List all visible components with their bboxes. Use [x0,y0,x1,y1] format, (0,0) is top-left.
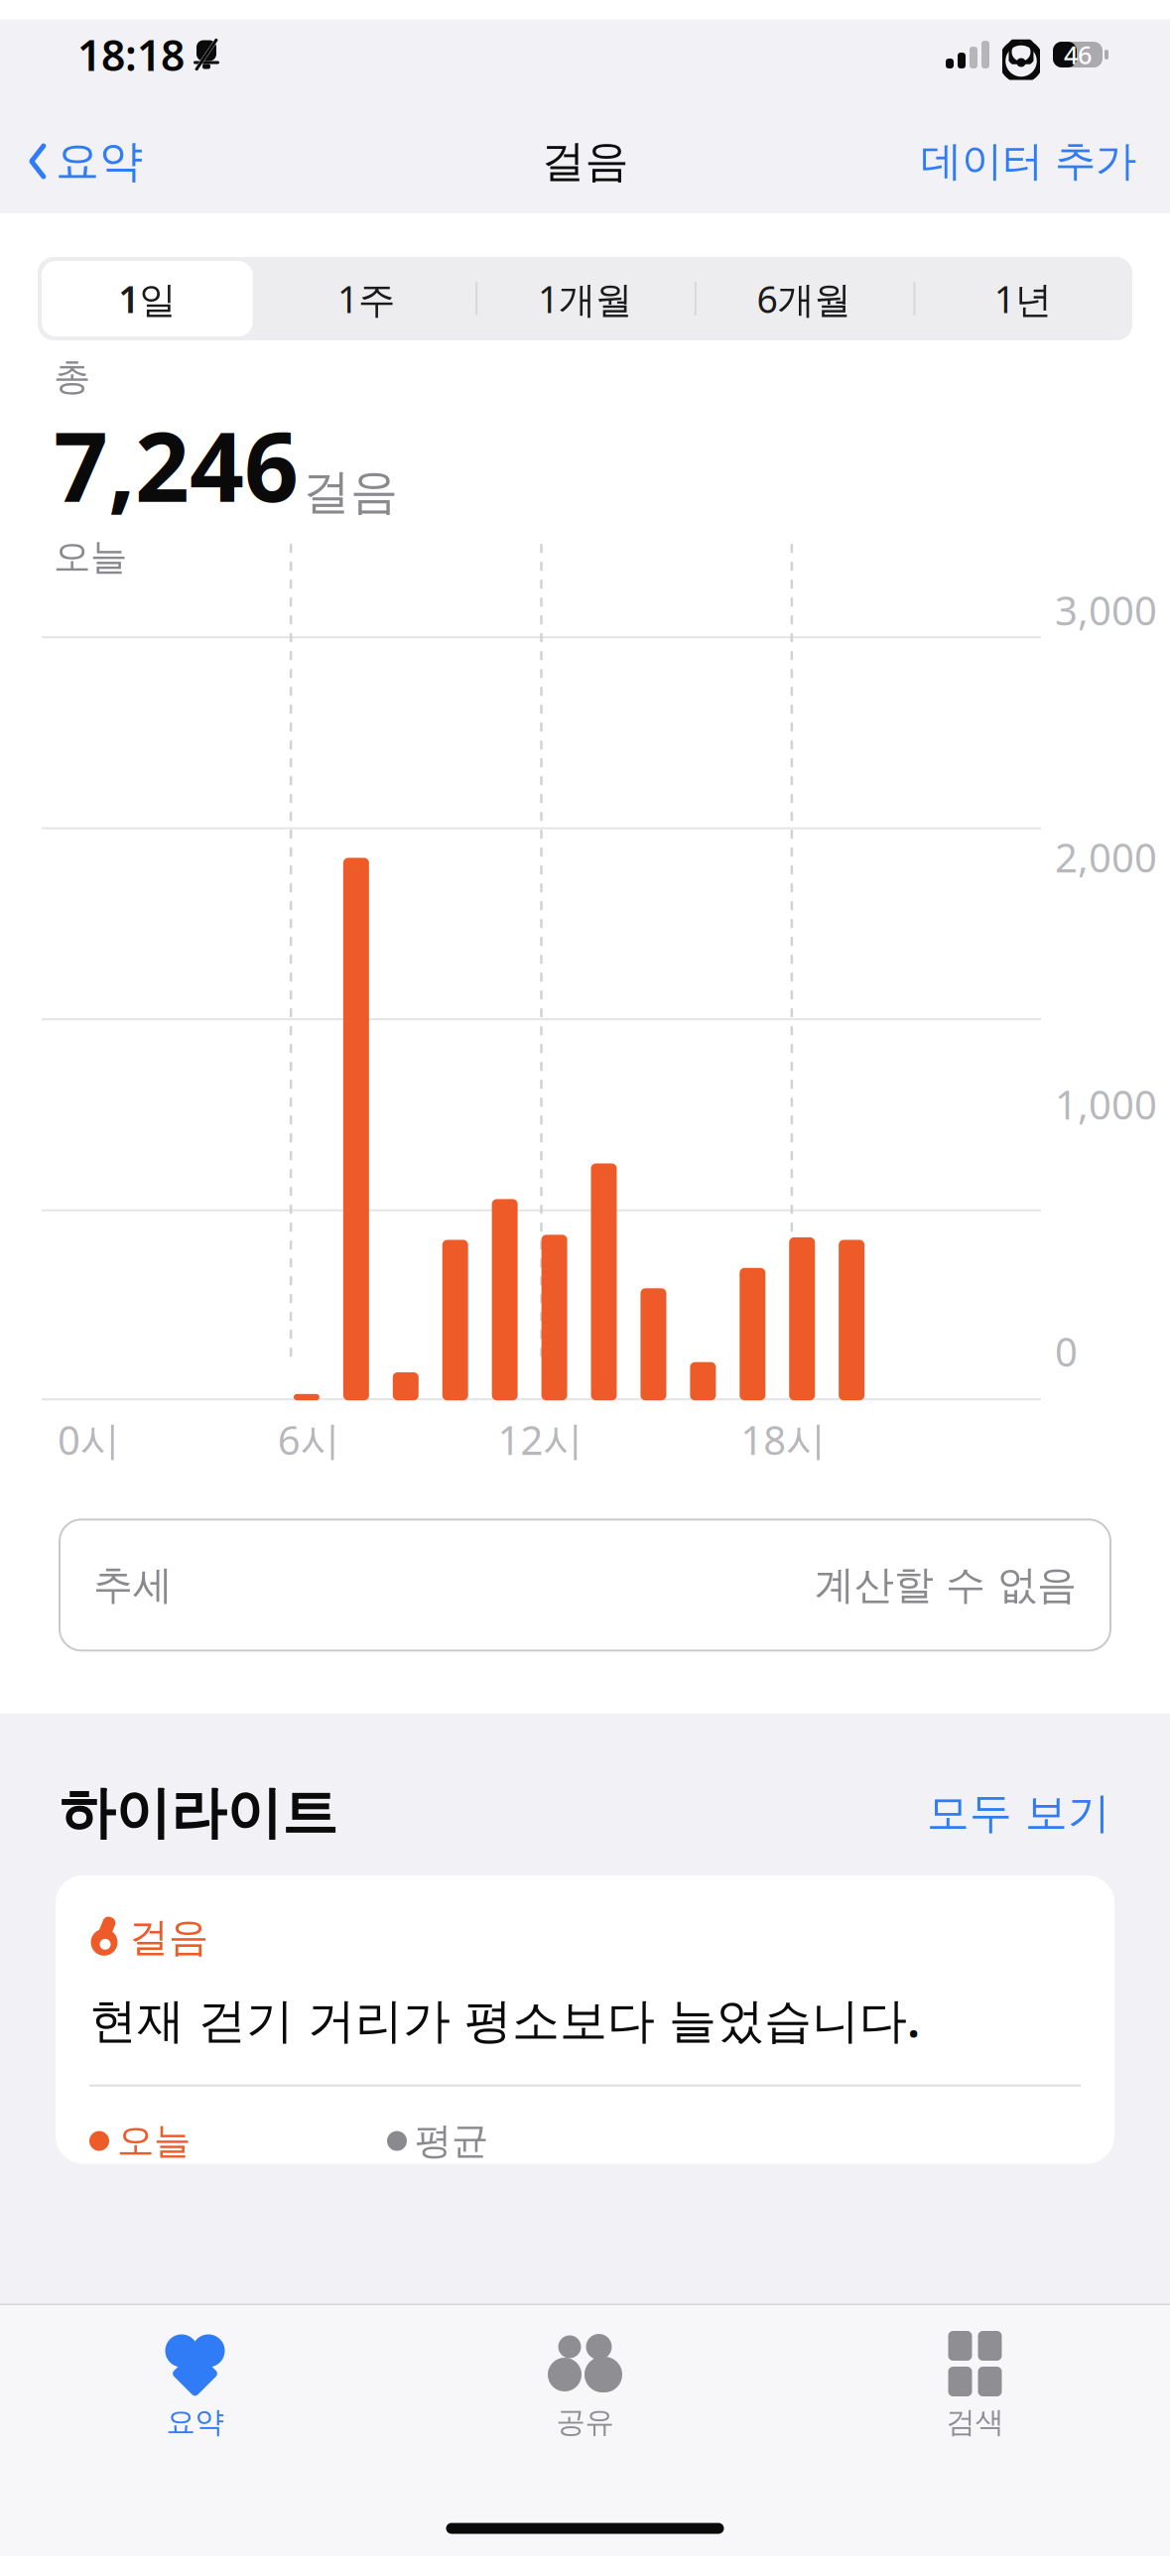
button[interactable]: 요약 [0,125,143,198]
staticText: 18:18 [77,26,185,83]
staticText: 0 [1055,1325,1078,1378]
button[interactable]: 검색 [780,2327,1170,2446]
staticText: 1,000 [1055,1078,1157,1130]
staticText: 계산할 수 없음 [815,1561,1077,1609]
button[interactable]: 1개월 [476,257,694,340]
button[interactable]: 1일 [38,257,257,340]
staticText: 요약 [56,134,143,188]
button[interactable]: 6개월 [694,257,913,340]
button[interactable]: 걸음 [56,1875,1114,2164]
button[interactable]: 1년 [913,257,1132,340]
staticText: 추세 [93,1561,173,1609]
staticText: 6개월 [757,274,851,323]
staticText: 6시 [278,1413,340,1466]
button[interactable]: 1주 [257,257,476,340]
staticText: 걸음 [129,1913,208,1962]
staticText: 18시 [741,1413,826,1466]
staticText: 오늘 [117,2118,191,2164]
staticText: 12시 [498,1413,583,1466]
staticText: 0시 [58,1413,120,1466]
staticText: 46 [1064,38,1092,71]
staticText: 평균 [415,2118,488,2164]
button[interactable]: 공유 [390,2327,780,2446]
staticText: 요약 [166,2404,224,2440]
staticText: 공유 [556,2404,614,2440]
staticText: 걸음 [303,463,398,521]
staticText: 총 [54,354,90,400]
staticText: 데이터 추가 [921,136,1136,186]
staticText: 1일 [118,274,176,323]
staticText: 3,000 [1055,584,1157,636]
staticText: 걸음 [541,134,629,188]
staticText: 오늘 [54,534,127,580]
staticText: 검색 [946,2404,1004,2440]
staticText: 모두 보기 [927,1787,1110,1839]
staticText: 현재 걷기 거리가 평소보다 늘었습니다. [89,1987,920,2051]
staticText: 1년 [994,274,1052,323]
button[interactable]: 데이터 추가 [921,126,1170,196]
staticText: 7,246 [54,402,299,528]
staticText: 2,000 [1055,831,1157,883]
button[interactable]: 요약 [0,2327,390,2446]
staticText: 하이라이트 [60,1779,337,1847]
button[interactable]: 모두 보기 [927,1779,1110,1847]
staticText: 1개월 [538,274,632,323]
staticText: 1주 [337,274,395,323]
button[interactable]: 추세 [60,1520,1110,1650]
